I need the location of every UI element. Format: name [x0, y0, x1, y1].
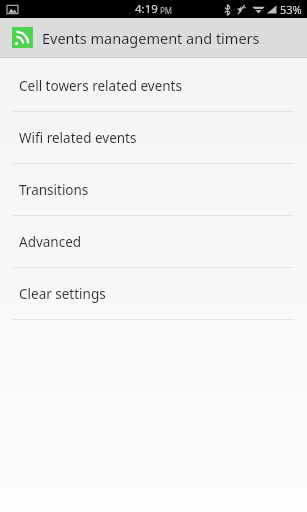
button[interactable]: Advanced	[0, 216, 307, 267]
staticText: 53%	[280, 2, 302, 17]
staticText: Transitions	[19, 181, 89, 199]
other: App icon	[12, 27, 33, 48]
staticText: Advanced	[19, 233, 82, 251]
staticText: Cell towers related events	[19, 77, 182, 95]
button[interactable]: App icon	[0, 18, 307, 57]
button[interactable]: Wifi related events	[0, 112, 307, 163]
button[interactable]: Transitions	[0, 164, 307, 215]
button[interactable]: Cell towers related events	[0, 60, 307, 111]
staticText: 4:19	[135, 1, 158, 17]
staticText: Clear settings	[19, 285, 106, 303]
staticText: PM	[160, 5, 173, 16]
staticText: Wifi related events	[19, 129, 137, 147]
staticText: Events management and timers	[42, 28, 260, 48]
button[interactable]: Clear settings	[0, 268, 307, 319]
